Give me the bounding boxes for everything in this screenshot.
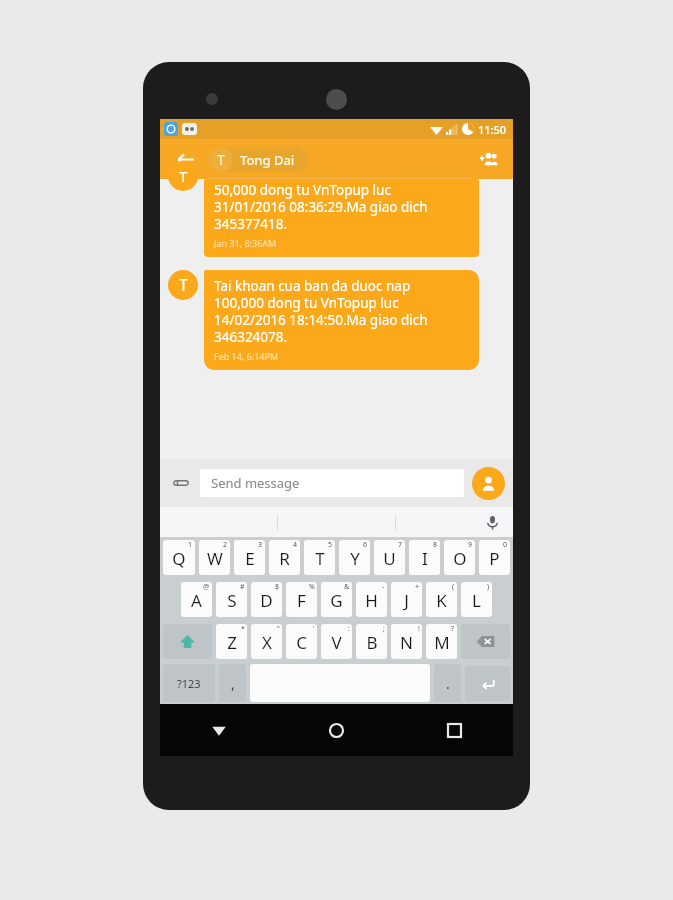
staticText: T [179,166,188,186]
staticText: L [472,589,481,612]
staticText: C [296,631,307,654]
staticText: , [231,674,235,693]
staticText: N [400,631,413,654]
button[interactable]: R [269,540,300,575]
button[interactable]: K [426,582,457,617]
staticText: Y [350,547,360,570]
staticText: Send message [211,474,300,492]
staticText: 8 [433,540,438,550]
staticText: Jan 31, 8:36AM [214,237,277,249]
staticText: 1 [188,540,193,550]
button[interactable]: B [356,624,387,659]
staticText: J [404,589,409,612]
staticText: 0 [503,540,508,550]
button[interactable]: Add people [473,144,503,174]
staticText: Tong Dai [240,151,295,169]
staticText: H [365,589,378,612]
staticText: I [422,547,428,570]
staticText: Z [227,631,237,654]
staticText: " [277,624,280,634]
button[interactable]: C [286,624,317,659]
button[interactable]: ?123 [163,664,215,702]
button[interactable]: Z [216,624,247,659]
button[interactable]: Y [339,540,370,575]
staticText: V [331,631,342,654]
staticText: @ [203,582,210,592]
staticText: T [179,274,188,296]
button[interactable]: Back [160,704,277,756]
staticText: Q [172,547,186,570]
button[interactable]: 50,000 dong tu VnTopup luc 31/01/2016 08… [204,179,479,257]
button[interactable]: Home [277,704,395,756]
staticText: S [227,589,237,612]
button[interactable]: J [391,582,422,617]
staticText: + [415,582,420,592]
staticText: : [348,624,350,634]
button[interactable]: T [304,540,335,575]
staticText: W [207,547,223,570]
staticText: % [309,582,315,592]
staticText: 5 [328,540,333,550]
button[interactable]: H [356,582,387,617]
button[interactable]: Attach [168,470,194,496]
staticText: 2 [223,540,228,550]
button[interactable]: F [286,582,317,617]
button[interactable]: Recents [395,704,513,756]
button[interactable]: N [391,624,422,659]
staticText: X [262,631,272,654]
button[interactable]: M [426,624,457,659]
staticText: 50,000 dong tu VnTopup luc 31/01/2016 08… [214,181,428,233]
staticText: # [240,582,245,592]
button[interactable]: V [321,624,352,659]
button[interactable]: Tai khoan cua ban da duoc nap 100,000 do… [204,270,479,370]
staticText: R [279,547,290,570]
button[interactable]: S [216,582,247,617]
button[interactable]: P [479,540,510,575]
staticText: A [191,589,202,612]
staticText: T [217,150,225,169]
staticText: M [434,631,450,654]
staticText: G [330,589,343,612]
staticText: ' [313,624,315,634]
staticText: F [297,589,306,612]
button[interactable]: Back [170,144,200,174]
button[interactable]: E [234,540,265,575]
button[interactable]: Voice input [481,511,503,533]
button[interactable]: X [251,624,282,659]
staticText: ?123 [177,676,201,691]
staticText: K [436,589,447,612]
button[interactable]: Send [472,467,505,500]
button[interactable]: A [181,582,212,617]
staticText: - [382,582,385,592]
button[interactable]: G [321,582,352,617]
button[interactable]: . [434,664,461,702]
staticText: D [260,589,273,612]
staticText: * [241,624,245,634]
button[interactable]: U [374,540,405,575]
staticText: . [446,674,450,693]
staticText: 4 [293,540,298,550]
staticText: 7 [398,540,403,550]
button[interactable]: Send message [200,469,464,497]
button[interactable]: L [461,582,492,617]
staticText: 3 [258,540,263,550]
staticText: ; [383,624,385,634]
staticText: ) [487,582,490,592]
button[interactable]: W [199,540,230,575]
button[interactable]: Enter [465,666,510,701]
staticText: O [453,547,467,570]
staticText: & [344,582,350,592]
button[interactable]: T [208,147,309,172]
button[interactable]: O [444,540,475,575]
staticText: ? [451,624,455,634]
button[interactable]: Shift [163,624,212,659]
button[interactable]: , [219,664,246,702]
button[interactable]: I [409,540,440,575]
button[interactable]: Backspace [461,624,510,659]
staticText: P [489,547,500,570]
button[interactable]: Q [163,540,195,575]
button[interactable]: D [251,582,282,617]
staticText: $ [275,582,280,592]
staticText: Feb 14, 6:14PM [214,350,279,362]
